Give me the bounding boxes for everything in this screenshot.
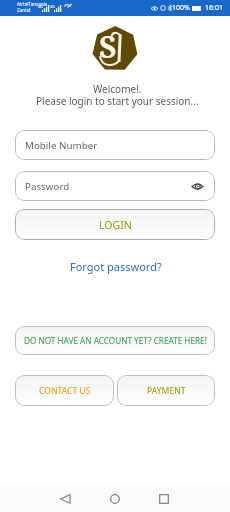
staticText: 4G xyxy=(38,4,43,9)
staticText: Welcome!. xyxy=(93,82,142,96)
button[interactable]: Password xyxy=(15,171,215,201)
staticText: AirtelTanzania xyxy=(17,1,48,7)
staticText: PAYMENT xyxy=(147,385,186,397)
button[interactable]: Home xyxy=(100,486,130,512)
staticText: Mobile Number xyxy=(25,139,98,152)
staticText: DO NOT HAVE AN ACCOUNT YET? CREATE HERE! xyxy=(24,335,207,346)
staticText: Password xyxy=(25,180,70,193)
staticText: LOGIN xyxy=(99,218,132,232)
staticText: 16:01 xyxy=(205,3,223,13)
staticText: 4G xyxy=(50,4,55,9)
staticText: Zantel xyxy=(17,7,31,13)
staticText: 100% xyxy=(172,3,190,13)
staticText: Please login to start your session... xyxy=(36,94,199,108)
staticText: S xyxy=(99,26,117,67)
button[interactable]: Recent apps xyxy=(149,486,179,512)
button[interactable]: Mobile Number xyxy=(15,130,215,160)
button[interactable]: Forgot password? xyxy=(67,256,165,277)
button[interactable]: CONTACT US xyxy=(15,375,114,406)
button[interactable]: DO NOT HAVE AN ACCOUNT YET? CREATE HERE! xyxy=(15,326,215,355)
button[interactable]: PAYMENT xyxy=(117,375,215,406)
other: Show password xyxy=(192,182,203,191)
staticText: CONTACT US xyxy=(39,385,91,397)
button[interactable]: LOGIN xyxy=(15,209,215,240)
button[interactable]: Back xyxy=(50,486,80,512)
